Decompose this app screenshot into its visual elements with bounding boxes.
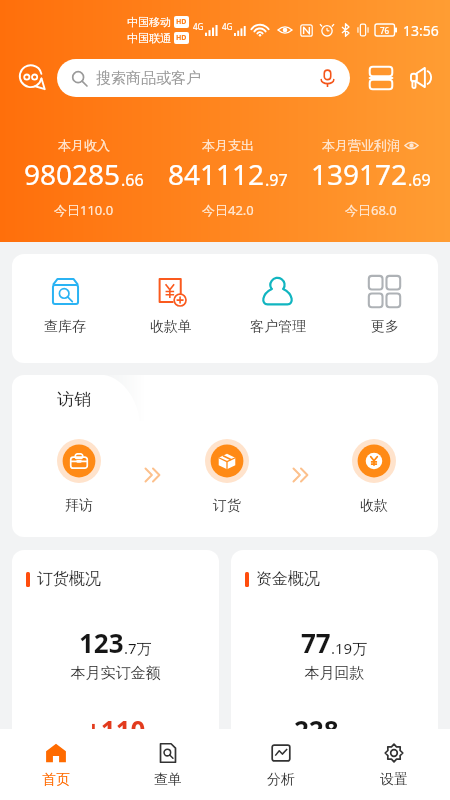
staticText: 本月营业利润 [322,137,400,153]
button[interactable]: Messages [17,63,47,93]
staticText: 980285 [24,155,121,193]
staticText: 首页 [42,771,70,789]
staticText: 订货概况 [37,569,101,589]
button[interactable]: 查库存 [12,275,118,336]
staticText: .66 [121,169,144,191]
button[interactable]: 更多 [331,275,438,336]
staticText: 本月回款 [231,664,438,683]
button[interactable]: Announcements [406,62,438,94]
staticText: 今日68.0 [345,201,397,219]
staticText: 中国联通 [127,31,171,45]
button[interactable]: 搜索商品或客户 [57,59,350,97]
button[interactable]: List [365,62,397,94]
staticText: HD [176,33,187,43]
staticText: 4G [193,21,204,32]
staticText: 查单 [154,771,182,789]
button[interactable]: 查单 [112,729,224,800]
button[interactable]: 首页 [0,729,112,800]
staticText: .69 [408,169,431,191]
staticText: 收款 [360,497,388,515]
staticText: .19万 [331,638,368,658]
button[interactable]: 订货概况 [12,550,219,750]
staticText: 本月实订金额 [12,664,219,683]
staticText: 今日42.0 [202,201,254,219]
button[interactable]: 分析 [224,729,337,800]
staticText: 查库存 [44,318,86,336]
staticText: 4G [222,21,233,32]
staticText: 设置 [380,771,408,789]
staticText: 资金概况 [256,569,320,589]
staticText: 139172 [311,155,408,193]
staticText: 本月收入 [58,137,110,153]
staticText: 拜访 [65,497,93,515]
staticText: 搜索商品或客户 [96,69,201,88]
button[interactable]: 收款 [352,439,396,515]
staticText: 123 [79,625,124,660]
button[interactable]: 收款单 [118,275,224,336]
staticText: 77 [301,625,331,660]
staticText: 中国移动 [127,15,171,29]
staticText: 13:56 [403,21,439,40]
staticText: .7万 [124,638,152,658]
staticText: 更多 [371,318,399,336]
button[interactable]: 资金概况 [231,550,438,750]
staticText: 访销 [57,389,91,410]
staticText: .97 [265,169,288,191]
staticText: 本月支出 [202,137,254,153]
staticText: 收款单 [150,318,192,336]
button[interactable]: 订货 [205,439,249,515]
staticText: 841112 [168,155,265,193]
staticText: 订货 [213,497,241,515]
button[interactable]: 设置 [337,729,450,800]
staticText: HD [176,17,187,27]
button[interactable]: 拜访 [57,439,101,515]
staticText: 分析 [267,771,295,789]
button[interactable]: 客户管理 [224,275,331,336]
staticText: 228 [294,712,339,747]
staticText: +110 [86,712,146,747]
staticText: 76 [380,25,390,36]
staticText: 客户管理 [250,318,306,336]
staticText: 今日110.0 [54,201,114,219]
